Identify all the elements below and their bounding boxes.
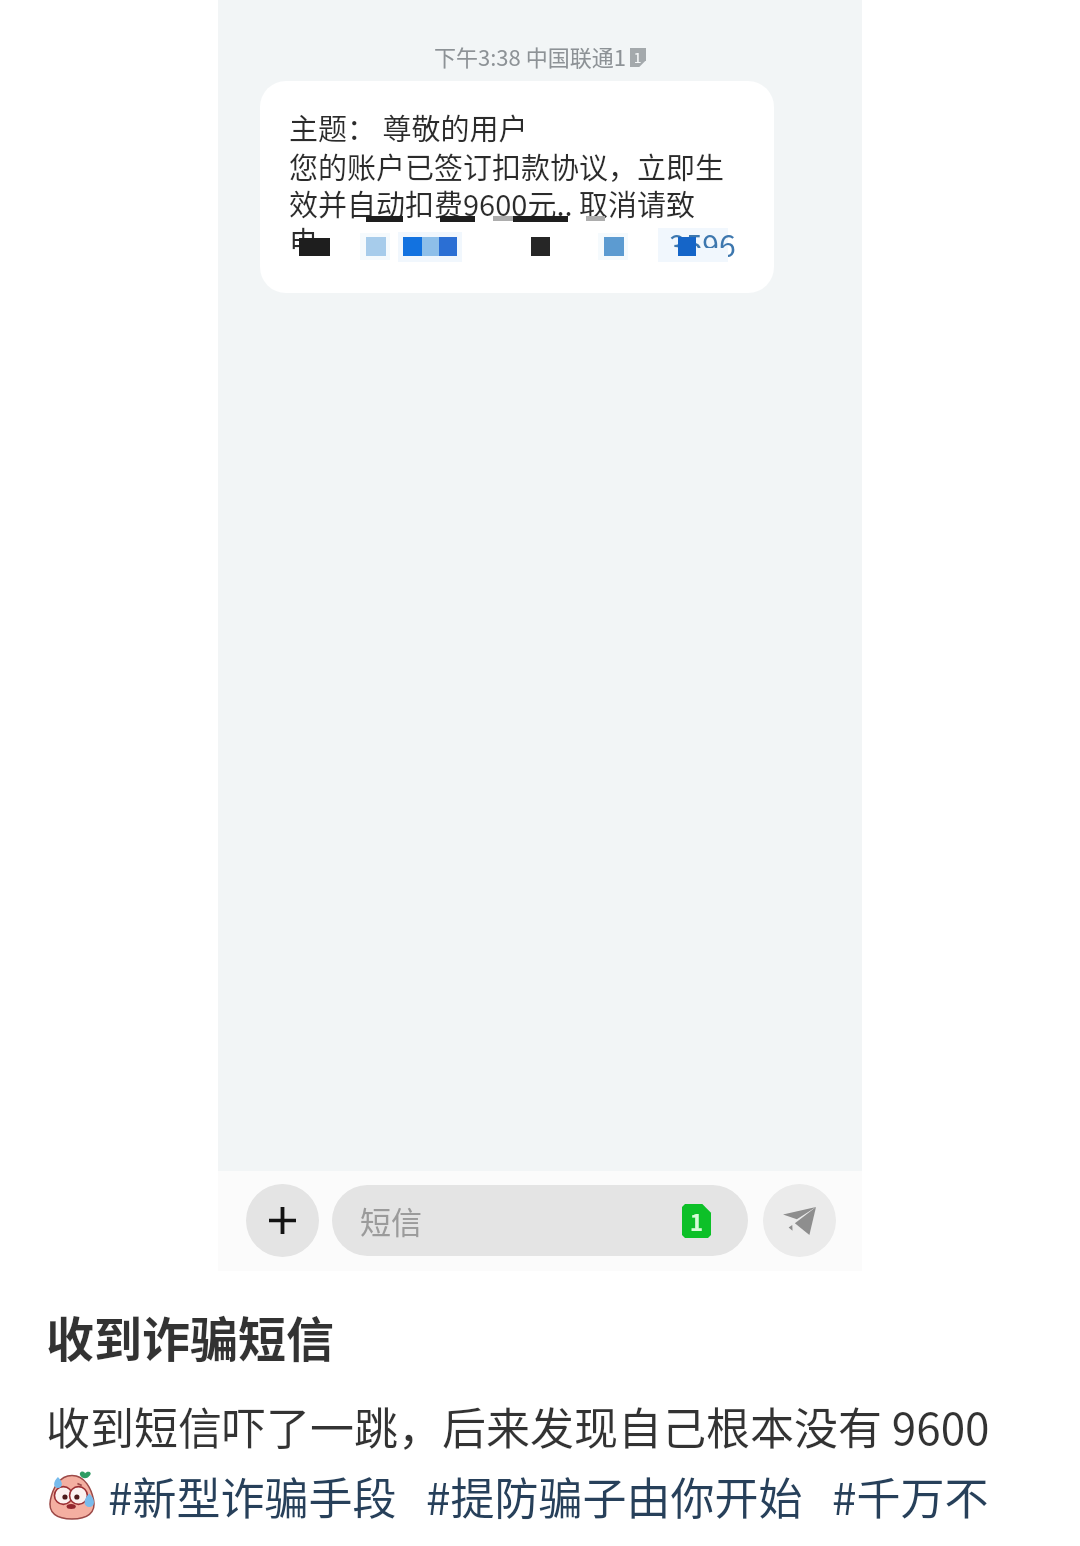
staticText: #新型诈骗手段 #提防骗子由你开始 #千万不 [108, 1464, 989, 1528]
button[interactable]: Send [763, 1184, 836, 1257]
staticText: 短信 [360, 1198, 422, 1243]
button[interactable]: 短信 [332, 1185, 748, 1256]
staticText: 1 [690, 1205, 703, 1237]
staticText: 您的账户已签订扣款协议，立即生 [289, 145, 725, 187]
button[interactable]: Add attachment [246, 1184, 319, 1257]
staticText: 电 [289, 219, 319, 261]
staticText: 收到短信吓了一跳，后来发现自己根本没有 9600 [46, 1394, 990, 1458]
staticText: 3596 [669, 222, 736, 265]
staticText: 效并自动扣费9600元.. 取消请致 [289, 182, 696, 224]
staticText: 1 [634, 48, 642, 67]
button[interactable]: 主题： 尊敬的用户 [260, 81, 774, 293]
staticText: 主题： 尊敬的用户 [289, 106, 528, 148]
staticText: 收到诈骗短信 [46, 1301, 335, 1371]
staticText: 下午3:38 中国联通1 [434, 40, 626, 72]
